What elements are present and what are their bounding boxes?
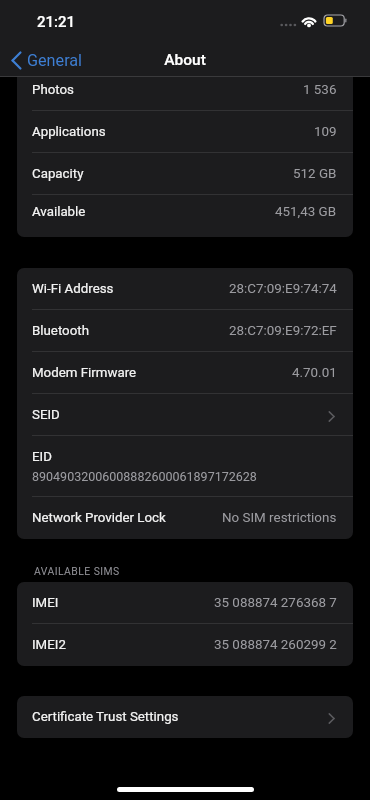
- staticText: Photos: [32, 82, 74, 98]
- button[interactable]: Capacity: [17, 153, 353, 195]
- staticText: 451,43 GB: [275, 204, 337, 220]
- other: Wi-Fi: [300, 14, 318, 27]
- staticText: Applications: [32, 124, 106, 140]
- staticText: Modem Firmware: [32, 365, 137, 381]
- staticText: 35 088874 260299 2: [214, 637, 337, 653]
- staticText: General: [27, 51, 83, 70]
- staticText: Network Provider Lock: [32, 510, 166, 526]
- staticText: Wi-Fi Address: [32, 281, 114, 297]
- staticText: 109: [314, 124, 337, 140]
- staticText: 1 536: [303, 82, 337, 98]
- staticText: EID: [32, 449, 52, 465]
- staticText: About: [0, 51, 370, 69]
- staticText: Bluetooth: [32, 323, 89, 339]
- button[interactable]: Network Provider Lock: [17, 497, 353, 539]
- button[interactable]: EID: [17, 436, 353, 497]
- button[interactable]: Available: [17, 195, 353, 229]
- other: Battery: [324, 15, 347, 26]
- staticText: AVAILABLE SIMS: [34, 565, 120, 577]
- staticText: SEID: [32, 407, 60, 423]
- button[interactable]: SEID: [17, 394, 353, 436]
- staticText: 21:21: [37, 13, 76, 31]
- staticText: 89049032006008882600061897172628: [32, 469, 257, 484]
- staticText: 35 088874 276368 7: [214, 595, 337, 611]
- button[interactable]: General: [9, 48, 85, 72]
- button[interactable]: IMEI2: [17, 624, 353, 666]
- button[interactable]: Certificate Trust Settings: [17, 696, 353, 738]
- staticText: 28:C7:09:E9:74:74: [229, 281, 337, 297]
- staticText: IMEI: [32, 595, 59, 611]
- staticText: 4.70.01: [292, 365, 337, 381]
- staticText: IMEI2: [32, 637, 66, 653]
- staticText: Capacity: [32, 166, 84, 182]
- staticText: Available: [32, 204, 86, 220]
- button[interactable]: IMEI: [17, 582, 353, 624]
- button[interactable]: Applications: [17, 111, 353, 153]
- button[interactable]: Bluetooth: [17, 310, 353, 352]
- staticText: 512 GB: [293, 166, 337, 182]
- button[interactable]: Photos: [17, 77, 353, 111]
- staticText: Certificate Trust Settings: [32, 709, 179, 725]
- button[interactable]: Modem Firmware: [17, 352, 353, 394]
- button[interactable]: Wi-Fi Address: [17, 268, 353, 310]
- staticText: 28:C7:09:E9:72:EF: [229, 323, 337, 339]
- staticText: No SIM restrictions: [222, 510, 337, 526]
